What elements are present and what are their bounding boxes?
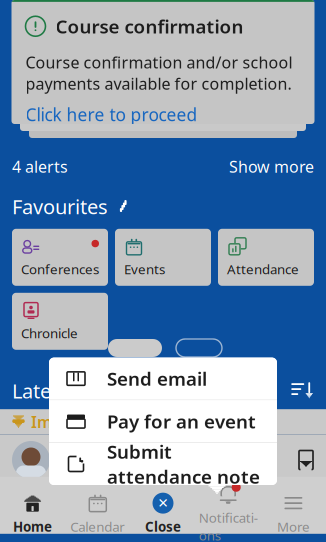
button[interactable]: Conferences bbox=[12, 229, 108, 286]
staticText: Important bbox=[31, 411, 110, 432]
staticText: Conferences bbox=[21, 260, 99, 278]
staticText: Chronicle bbox=[21, 324, 78, 342]
staticText: Home bbox=[13, 518, 52, 535]
button[interactable]: Sort bbox=[290, 382, 314, 400]
button[interactable]: Calendar bbox=[65, 486, 130, 541]
button[interactable]: Home bbox=[0, 486, 65, 541]
button[interactable]: Bookmark bbox=[298, 449, 314, 470]
staticText: Events bbox=[124, 260, 165, 278]
staticText: Course confirmation bbox=[55, 14, 243, 39]
staticText: Favourites bbox=[12, 193, 108, 220]
button[interactable]: Pay for an event bbox=[49, 400, 277, 442]
button[interactable]: Notifications bbox=[196, 477, 261, 542]
button[interactable]: Events bbox=[115, 229, 211, 286]
staticText: 4 alerts bbox=[12, 156, 68, 177]
staticText: Send email bbox=[107, 366, 207, 391]
staticText: Pay for an event bbox=[107, 409, 256, 434]
staticText: Calendar bbox=[70, 518, 125, 535]
staticText: Close bbox=[145, 518, 181, 535]
staticText: Submit attendance note bbox=[107, 439, 260, 489]
button[interactable]: Chronicle bbox=[12, 293, 108, 350]
button[interactable]: Send email bbox=[49, 358, 277, 400]
button[interactable]: More bbox=[261, 486, 326, 541]
staticText: Notifications bbox=[199, 509, 258, 542]
button[interactable]: Attendance bbox=[218, 229, 314, 286]
staticText: Show more bbox=[229, 156, 314, 177]
staticText: Latest bbox=[12, 377, 68, 404]
staticText: Attendance bbox=[227, 260, 299, 278]
staticText: ✕ bbox=[157, 496, 168, 511]
button[interactable]: Click here to proceed bbox=[25, 94, 197, 126]
button[interactable]: ✕ bbox=[130, 486, 196, 541]
staticText: Click here to proceed bbox=[25, 103, 197, 126]
button[interactable]: Show more bbox=[229, 156, 314, 177]
button[interactable]: Submit attendance note bbox=[49, 443, 277, 485]
staticText: More bbox=[277, 518, 310, 535]
staticText: Course confirmation and/or school paymen… bbox=[25, 52, 292, 94]
button[interactable]: Edit favourites bbox=[116, 199, 130, 213]
